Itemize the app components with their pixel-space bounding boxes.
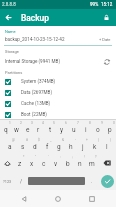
staticText: v <box>54 160 58 168</box>
button[interactable]: ?123 <box>0 172 15 190</box>
button[interactable]: Shift <box>0 154 14 172</box>
staticText: s <box>21 143 25 151</box>
button[interactable]: f <box>41 137 53 154</box>
button[interactable]: Refresh <box>101 56 112 67</box>
staticText: 5 <box>53 121 55 125</box>
staticText: Name <box>5 29 16 34</box>
button[interactable]: Data (2697MB) <box>0 87 116 98</box>
staticText: c <box>42 160 46 168</box>
staticText: backup_2014-10-23-15-12-42 <box>5 37 65 42</box>
button[interactable]: EFS (16MB) <box>0 120 116 131</box>
button[interactable]: j <box>77 137 89 154</box>
button[interactable]: q <box>0 120 11 137</box>
staticText: . <box>91 178 93 184</box>
button[interactable]: System (374MB) <box>0 76 116 87</box>
staticText: ' <box>48 155 49 159</box>
button[interactable]: + Date <box>98 36 112 43</box>
staticText: Backup <box>21 13 49 23</box>
staticText: t <box>49 126 52 134</box>
staticText: Internal Storage (9941 MB) <box>5 59 61 64</box>
staticText: Partitions <box>5 70 23 75</box>
staticText: y <box>60 126 64 134</box>
button[interactable]: g <box>53 137 65 154</box>
staticText: g <box>57 143 61 151</box>
button[interactable]: Enter <box>98 172 116 190</box>
staticText: 8 <box>89 121 91 125</box>
staticText: n <box>78 160 82 168</box>
button[interactable]: e <box>22 120 33 137</box>
button[interactable]: Backspace <box>98 154 116 172</box>
button[interactable]: m <box>86 154 98 172</box>
staticText: r <box>37 126 40 134</box>
staticText: & <box>62 138 64 142</box>
staticText: * <box>23 155 25 159</box>
button[interactable]: / <box>15 172 27 190</box>
staticText: 2 <box>20 121 22 125</box>
staticText: " <box>35 155 37 159</box>
staticText: / <box>20 178 23 184</box>
staticText: j <box>82 143 84 151</box>
button[interactable]: y <box>56 120 68 137</box>
staticText: b <box>66 160 70 168</box>
staticText: 4 <box>42 121 44 125</box>
button[interactable]: Cache (13MB) <box>0 98 116 109</box>
button[interactable]: u <box>68 120 80 137</box>
button[interactable]: i <box>80 120 92 137</box>
staticText: 3 <box>31 121 33 125</box>
button[interactable]: Back <box>0 9 17 26</box>
button[interactable]: Boot (22MB) <box>0 109 116 120</box>
staticText: : <box>60 155 61 159</box>
button[interactable]: Recents <box>85 192 99 206</box>
button[interactable]: p <box>104 120 116 137</box>
button[interactable]: k <box>89 137 101 154</box>
staticText: Cache (13MB) <box>21 101 51 106</box>
button[interactable]: w <box>11 120 22 137</box>
button[interactable]: r <box>33 120 44 137</box>
staticText: @ <box>12 138 15 142</box>
staticText: e <box>26 126 30 134</box>
staticText: m <box>89 160 95 168</box>
staticText: 7 <box>77 121 79 125</box>
staticText: 15:12 <box>101 2 113 7</box>
staticText: ; <box>72 155 73 159</box>
button[interactable]: l <box>101 137 113 154</box>
button[interactable]: a <box>3 137 16 154</box>
button[interactable]: Back <box>17 192 31 206</box>
button[interactable]: n <box>74 154 86 172</box>
staticText: o <box>96 126 100 134</box>
button[interactable]: v <box>50 154 62 172</box>
button[interactable]: Home <box>51 192 65 206</box>
staticText: l <box>106 143 108 151</box>
button[interactable]: s <box>16 137 29 154</box>
button[interactable]: z <box>14 154 26 172</box>
staticText: w <box>14 126 19 134</box>
button[interactable]: b <box>62 154 74 172</box>
button[interactable]: o <box>92 120 104 137</box>
button[interactable]: t <box>44 120 56 137</box>
staticText: Data (2697MB) <box>21 90 53 95</box>
staticText: x <box>30 160 34 168</box>
staticText: a <box>8 143 12 151</box>
staticText: Storage <box>5 49 19 54</box>
staticText: d <box>33 143 37 151</box>
button[interactable]: x <box>26 154 38 172</box>
staticText: 6 <box>65 121 67 125</box>
staticText: # <box>26 138 28 142</box>
staticText: ( <box>98 138 100 142</box>
button[interactable]: Lock <box>97 9 116 26</box>
button[interactable]: h <box>65 137 77 154</box>
staticText: 0 <box>113 121 115 125</box>
staticText: EFS (16MB) <box>21 123 46 128</box>
staticText: h <box>69 143 73 151</box>
staticText: ! <box>84 155 85 159</box>
staticText: p <box>108 126 112 134</box>
staticText: _ <box>50 138 52 142</box>
staticText: $ <box>38 138 40 142</box>
button[interactable]: d <box>29 137 41 154</box>
staticText: u <box>72 126 76 134</box>
staticText: + <box>86 138 88 142</box>
staticText: System (374MB) <box>21 79 56 84</box>
button[interactable]: c <box>38 154 50 172</box>
